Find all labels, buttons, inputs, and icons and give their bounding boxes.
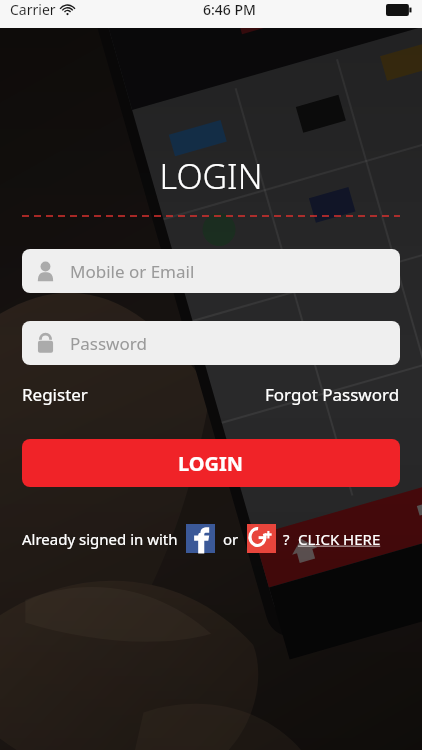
staticText: Register <box>22 383 88 406</box>
staticText: or <box>223 529 239 549</box>
staticText: ? <box>283 529 290 549</box>
staticText: Carrier <box>10 0 56 19</box>
staticText: Forgot Password <box>265 383 400 406</box>
button[interactable]: LOGIN <box>22 439 400 487</box>
staticText: LOGIN <box>178 450 244 477</box>
button[interactable]: Sign in with Facebook <box>186 524 215 553</box>
button[interactable]: Sign in with Google Plus <box>247 524 276 553</box>
button[interactable]: Password <box>22 321 400 365</box>
staticText: 6:46 PM <box>203 0 256 19</box>
button[interactable]: Register <box>22 383 88 406</box>
staticText: LOGIN <box>0 153 422 199</box>
button[interactable]: Forgot Password <box>265 383 400 406</box>
button[interactable]: Mobile or Email <box>22 249 400 293</box>
staticText: Already signed in with <box>22 529 178 549</box>
button[interactable]: CLICK HERE <box>298 529 381 549</box>
staticText: CLICK HERE <box>298 529 381 549</box>
staticText: Mobile or Email <box>70 260 195 283</box>
staticText: Password <box>70 332 147 355</box>
